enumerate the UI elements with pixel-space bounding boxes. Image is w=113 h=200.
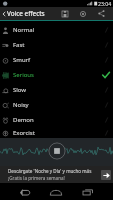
staticText: Slow <box>13 86 27 94</box>
staticText: Serious <box>13 71 34 79</box>
staticText: Normal <box>13 26 35 34</box>
button[interactable]: Smurf <box>0 52 113 67</box>
staticText: Exorcist <box>13 129 35 137</box>
button[interactable]: Normal <box>0 22 113 37</box>
button[interactable]: Recent apps <box>72 183 104 200</box>
staticText: Demon <box>13 116 34 124</box>
staticText: ¡Gratis la primera semana! <box>8 175 65 181</box>
button[interactable]: Fast <box>0 37 113 52</box>
button[interactable]: Stop playback <box>48 142 66 160</box>
button[interactable]: Serious <box>0 67 113 82</box>
button[interactable]: Noisy <box>0 97 113 112</box>
staticText: Noisy <box>13 101 29 109</box>
button[interactable]: Descárgate 'Noche y Día' y mucho más <box>0 166 113 183</box>
button[interactable]: Home <box>40 183 72 200</box>
staticText: Descárgate 'Noche y Día' y mucho más <box>8 168 92 174</box>
staticText: Voice effects <box>7 9 45 18</box>
button[interactable]: Share to WhatsApp <box>74 7 92 20</box>
staticText: Fast <box>13 41 25 49</box>
button[interactable]: Back <box>0 7 7 20</box>
staticText: Smurf <box>13 56 31 64</box>
button[interactable]: Demon <box>0 112 113 127</box>
button[interactable]: Save <box>56 7 74 20</box>
staticText: 23:04 <box>98 0 112 7</box>
button[interactable]: Back <box>9 183 41 200</box>
button[interactable]: Slow <box>0 82 113 97</box>
button[interactable]: Exorcist <box>0 127 113 138</box>
button[interactable]: Open advertisement <box>101 170 111 180</box>
button[interactable]: Share <box>92 7 110 20</box>
